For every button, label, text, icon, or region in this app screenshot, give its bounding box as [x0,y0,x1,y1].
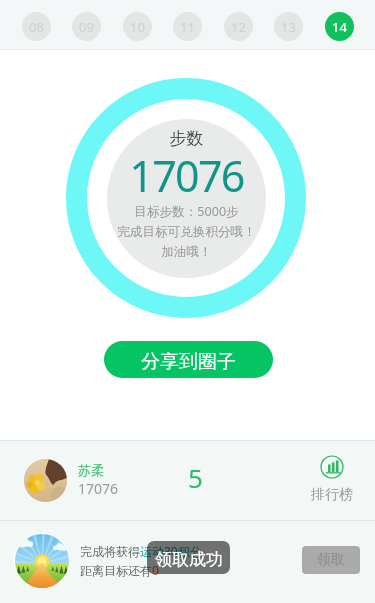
staticText: 分享到圈子 [141,350,236,374]
staticText: 17076 [78,479,119,498]
staticText: 步数 [107,128,266,149]
button[interactable]: 苏柔 [0,441,375,520]
staticText: 完成将获得运动30积分 [80,543,202,559]
button[interactable]: 10 [123,12,152,41]
button[interactable]: 08 [22,12,51,41]
button[interactable]: 排行榜 [307,455,357,504]
staticText: 08 [29,18,44,36]
button[interactable]: 11 [173,12,202,41]
staticText: 目标步数：5000步 完成目标可兑换积分哦！ 加油哦！ [107,203,266,259]
staticText: 12 [231,18,246,36]
staticText: 5 [188,460,203,495]
button[interactable]: 14 [325,12,354,41]
staticText: 13 [281,18,296,36]
staticText: 苏柔 [78,462,104,478]
staticText: 11 [180,18,195,36]
button[interactable]: 09 [72,12,101,41]
staticText: 14 [332,18,347,36]
button[interactable]: 13 [274,12,303,41]
staticText: 排行榜 [311,486,353,504]
staticText: 领取 [317,551,345,569]
staticText: 17076 [107,146,266,205]
button[interactable]: 分享到圈子 [104,341,273,378]
staticText: 09 [79,18,94,36]
staticText: 距离目标还有0 [80,562,159,578]
staticText: 领取成功 [155,549,223,570]
staticText: 10 [130,18,145,36]
button[interactable]: 12 [224,12,253,41]
button[interactable]: 领取 [302,546,360,574]
